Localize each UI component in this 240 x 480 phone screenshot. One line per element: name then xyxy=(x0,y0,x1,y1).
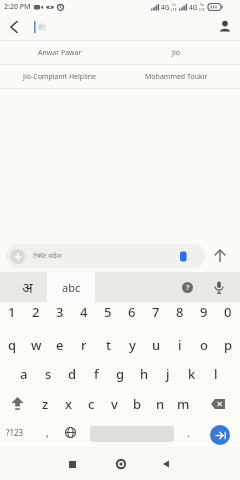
button[interactable]: d xyxy=(60,359,84,388)
staticText: s xyxy=(45,365,52,383)
staticText: p xyxy=(224,336,233,354)
staticText: 6 xyxy=(128,303,136,321)
staticText: 4 xyxy=(80,303,88,321)
staticText: 4G xyxy=(161,3,170,12)
button[interactable] xyxy=(212,248,228,264)
button[interactable] xyxy=(210,425,230,445)
button[interactable] xyxy=(111,454,131,474)
staticText: Anwar Pawar xyxy=(38,48,82,58)
button[interactable]: abc xyxy=(47,272,95,302)
button[interactable]: s xyxy=(36,359,60,388)
staticText: Vo xyxy=(172,2,177,7)
button[interactable]: 0 xyxy=(216,297,240,326)
button[interactable]: 4 xyxy=(72,297,96,326)
button[interactable]: a xyxy=(12,359,36,388)
button[interactable] xyxy=(59,418,81,447)
button[interactable]: g xyxy=(108,359,132,388)
staticText: Mohammed Toukir xyxy=(145,72,208,82)
button[interactable]: n xyxy=(149,389,172,418)
staticText: Vo xyxy=(200,2,205,7)
button[interactable]: t xyxy=(96,330,120,359)
button[interactable]: l xyxy=(204,359,228,388)
button[interactable]: j xyxy=(156,359,180,388)
button[interactable]: टेक्स्ट संदेश xyxy=(6,244,205,268)
staticText: 0 xyxy=(224,303,232,321)
button[interactable] xyxy=(206,274,232,300)
button[interactable]: ?123 xyxy=(0,418,29,447)
staticText: 1 xyxy=(8,303,16,321)
button[interactable]: e xyxy=(48,330,72,359)
staticText: y xyxy=(129,336,136,354)
button[interactable]: 3 xyxy=(48,297,72,326)
staticText: i xyxy=(178,336,182,354)
staticText: b xyxy=(133,395,142,413)
staticText: v xyxy=(111,395,118,413)
staticText: z xyxy=(42,395,49,413)
button[interactable] xyxy=(62,454,82,474)
button[interactable]: r xyxy=(72,330,96,359)
button[interactable]: 7 xyxy=(144,297,168,326)
staticText: r xyxy=(81,336,87,354)
staticText: LTE xyxy=(171,7,177,12)
staticText: 3 xyxy=(56,303,64,321)
button[interactable]: ? xyxy=(174,274,200,300)
staticText: LTE xyxy=(199,7,205,12)
button[interactable]: w xyxy=(24,330,48,359)
button[interactable]: k xyxy=(180,359,204,388)
button[interactable]: Mohammed Toukir xyxy=(116,65,236,88)
staticText: m xyxy=(177,395,190,413)
staticText: g xyxy=(116,365,125,383)
staticText: abc xyxy=(62,280,81,295)
button[interactable]: z xyxy=(34,389,57,418)
staticText: 2:20 PM xyxy=(4,2,31,12)
button[interactable]: o xyxy=(192,330,216,359)
button[interactable]: h xyxy=(132,359,156,388)
button[interactable]: q xyxy=(0,330,24,359)
button[interactable] xyxy=(195,389,240,418)
staticText: ? xyxy=(186,283,190,293)
staticText: u xyxy=(152,336,161,354)
button[interactable]: f xyxy=(84,359,108,388)
button[interactable]: u xyxy=(144,330,168,359)
button[interactable] xyxy=(0,389,34,418)
button[interactable]: x xyxy=(57,389,80,418)
staticText: e xyxy=(56,336,64,354)
staticText: d xyxy=(68,365,77,383)
staticText: h xyxy=(140,365,149,383)
staticText: q xyxy=(8,336,17,354)
button[interactable]: . xyxy=(176,418,200,447)
button[interactable]: 2 xyxy=(24,297,48,326)
staticText: टेक्स्ट संदेश xyxy=(33,251,62,261)
staticText: c xyxy=(88,395,95,413)
button[interactable]: Anwar Pawar xyxy=(0,41,120,64)
button[interactable]: i xyxy=(168,330,192,359)
button[interactable]: c xyxy=(80,389,103,418)
button[interactable]: v xyxy=(103,389,126,418)
button[interactable]: 8 xyxy=(168,297,192,326)
button[interactable]: Jio-Complaint Helpline xyxy=(0,65,120,88)
staticText: a xyxy=(20,365,28,383)
button[interactable]: 9 xyxy=(192,297,216,326)
button[interactable]: अ xyxy=(7,272,47,302)
button[interactable]: p xyxy=(216,330,240,359)
button[interactable] xyxy=(6,19,22,35)
staticText: w xyxy=(31,336,42,354)
button[interactable]: Jio xyxy=(116,41,236,64)
staticText: अ xyxy=(22,278,33,297)
staticText: n xyxy=(156,395,165,413)
button[interactable]: 5 xyxy=(96,297,120,326)
button[interactable] xyxy=(218,20,232,34)
button[interactable]: m xyxy=(172,389,195,418)
button[interactable]: 1 xyxy=(0,297,24,326)
button[interactable]: b xyxy=(126,389,149,418)
button[interactable]: , xyxy=(35,418,59,447)
button[interactable]: y xyxy=(120,330,144,359)
staticText: t xyxy=(106,336,111,354)
staticText: 7 xyxy=(152,303,160,321)
staticText: 2 xyxy=(32,303,40,321)
staticText: l xyxy=(214,365,218,383)
button[interactable]: 6 xyxy=(120,297,144,326)
staticText: ?123 xyxy=(6,427,24,438)
button[interactable] xyxy=(156,454,176,474)
